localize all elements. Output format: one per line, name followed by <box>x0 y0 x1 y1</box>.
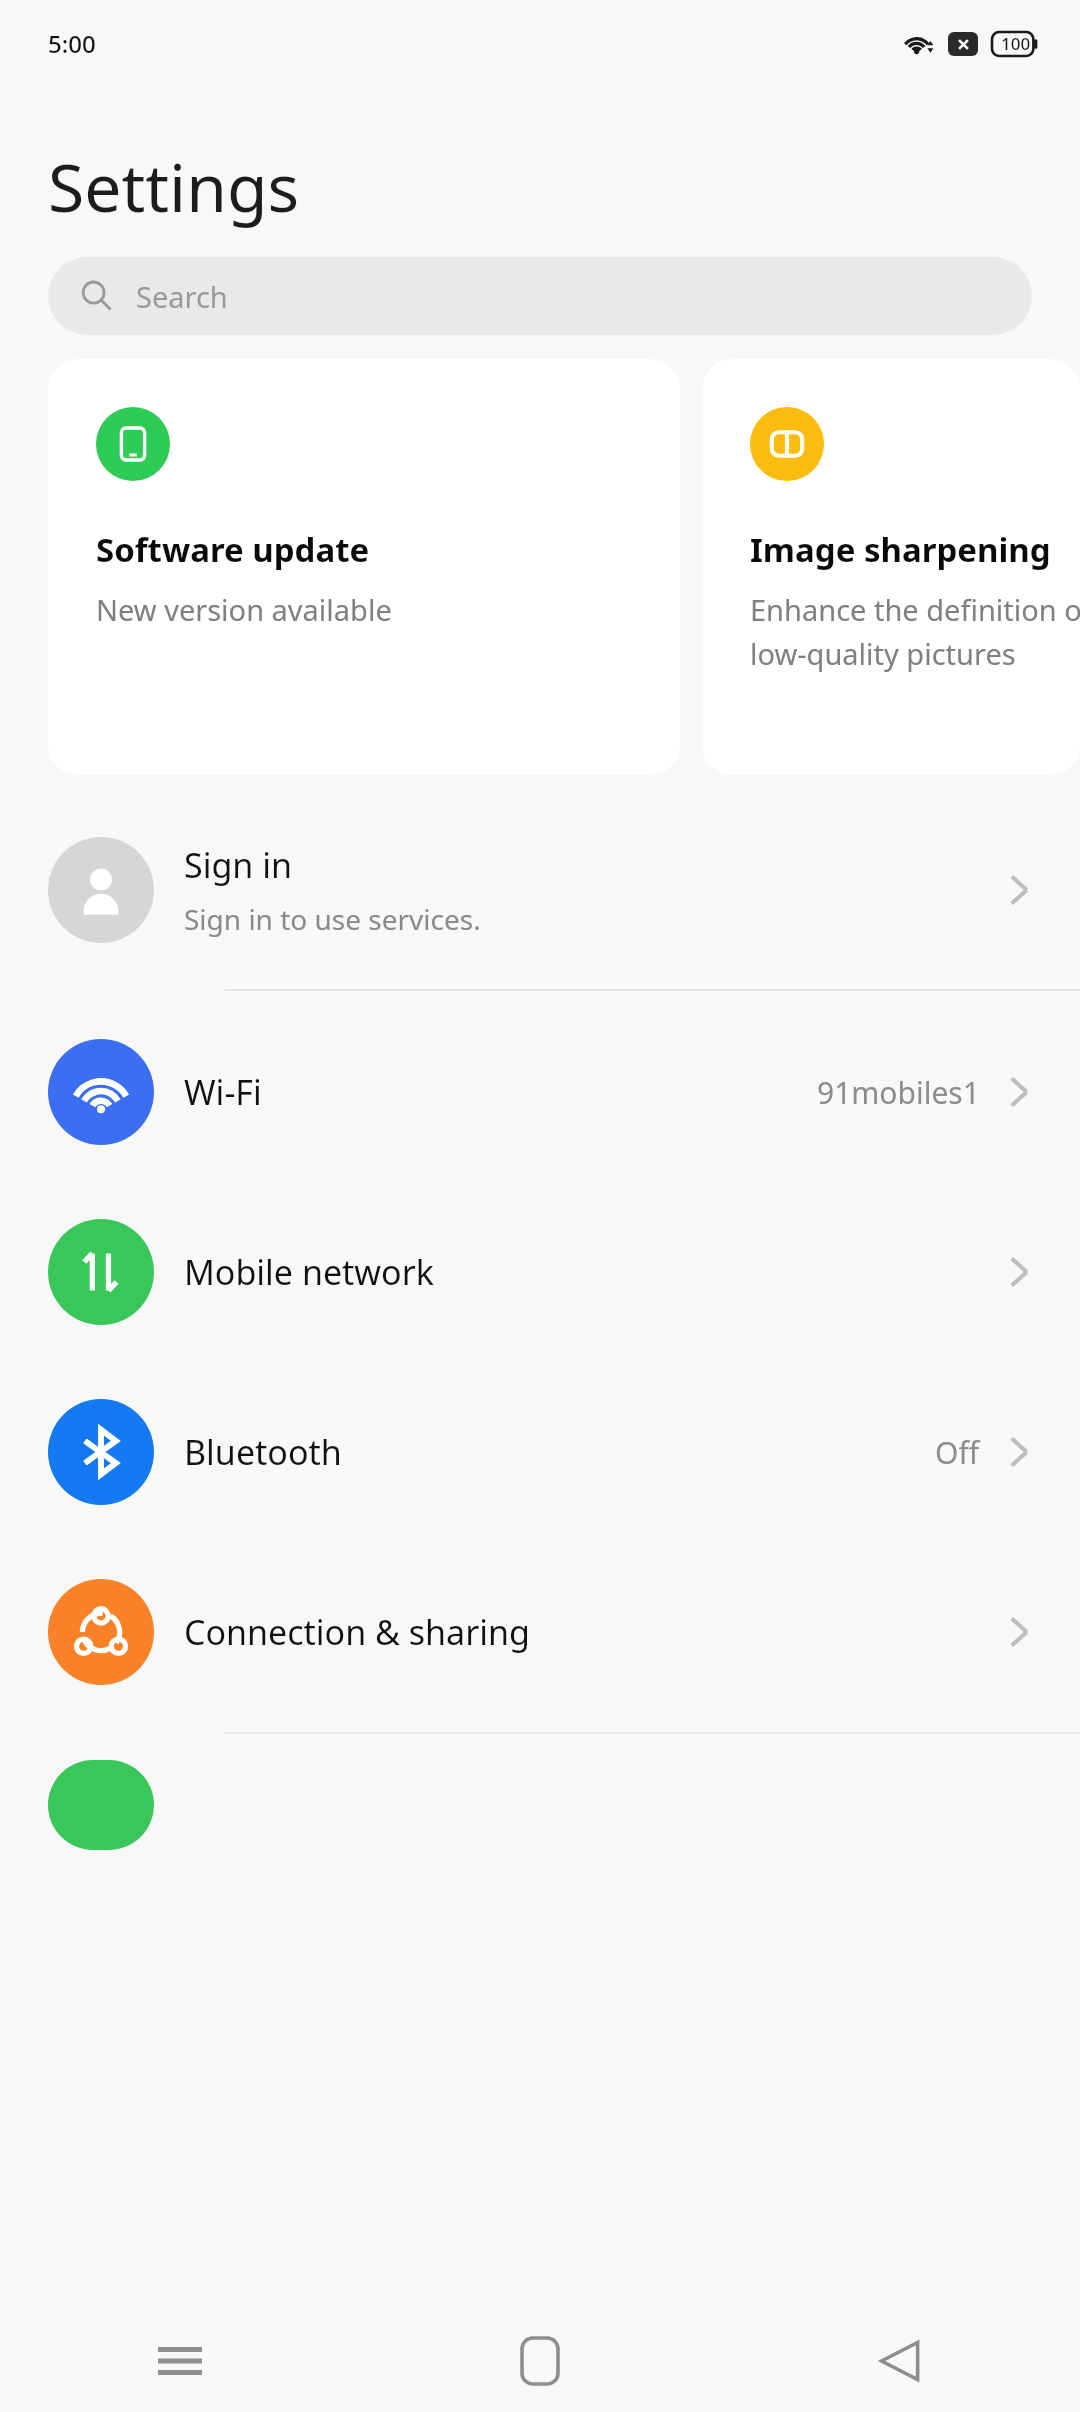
button[interactable]: Connection & sharing <box>0 1542 1080 1722</box>
staticText: Image sharpening <box>750 527 1051 572</box>
button[interactable]: Home <box>360 2310 720 2412</box>
staticText: Connection & sharing <box>184 1609 1006 1655</box>
staticText: Software update <box>96 527 370 572</box>
button[interactable]: Recent apps <box>0 2310 360 2412</box>
staticText: Mobile network <box>184 1249 1006 1295</box>
staticText: Enhance the definition of low-quality pi… <box>750 590 1080 673</box>
staticText: Search <box>136 277 228 316</box>
staticText: Settings <box>48 141 300 231</box>
staticText: Bluetooth <box>184 1429 935 1475</box>
staticText: Sign in <box>184 842 292 888</box>
button[interactable]: Search <box>48 257 1032 335</box>
button[interactable]: Back <box>720 2310 1080 2412</box>
staticText: Sign in to use services. <box>184 900 481 938</box>
button[interactable]: Wi-Fi <box>0 1002 1080 1182</box>
button[interactable]: Sign in <box>0 804 1080 976</box>
staticText: 91mobiles1 <box>817 1072 980 1113</box>
staticText: Off <box>935 1432 980 1473</box>
staticText: New version available <box>96 590 392 629</box>
button[interactable]: Software update <box>48 359 680 775</box>
staticText: 5:00 <box>48 27 96 60</box>
button[interactable]: Bluetooth <box>0 1362 1080 1542</box>
staticText: Wi-Fi <box>184 1069 817 1115</box>
button[interactable]: Image sharpening <box>702 359 1080 775</box>
button[interactable]: Mobile network <box>0 1182 1080 1362</box>
button[interactable] <box>0 1760 1080 1850</box>
staticText: 100 <box>1001 32 1031 55</box>
